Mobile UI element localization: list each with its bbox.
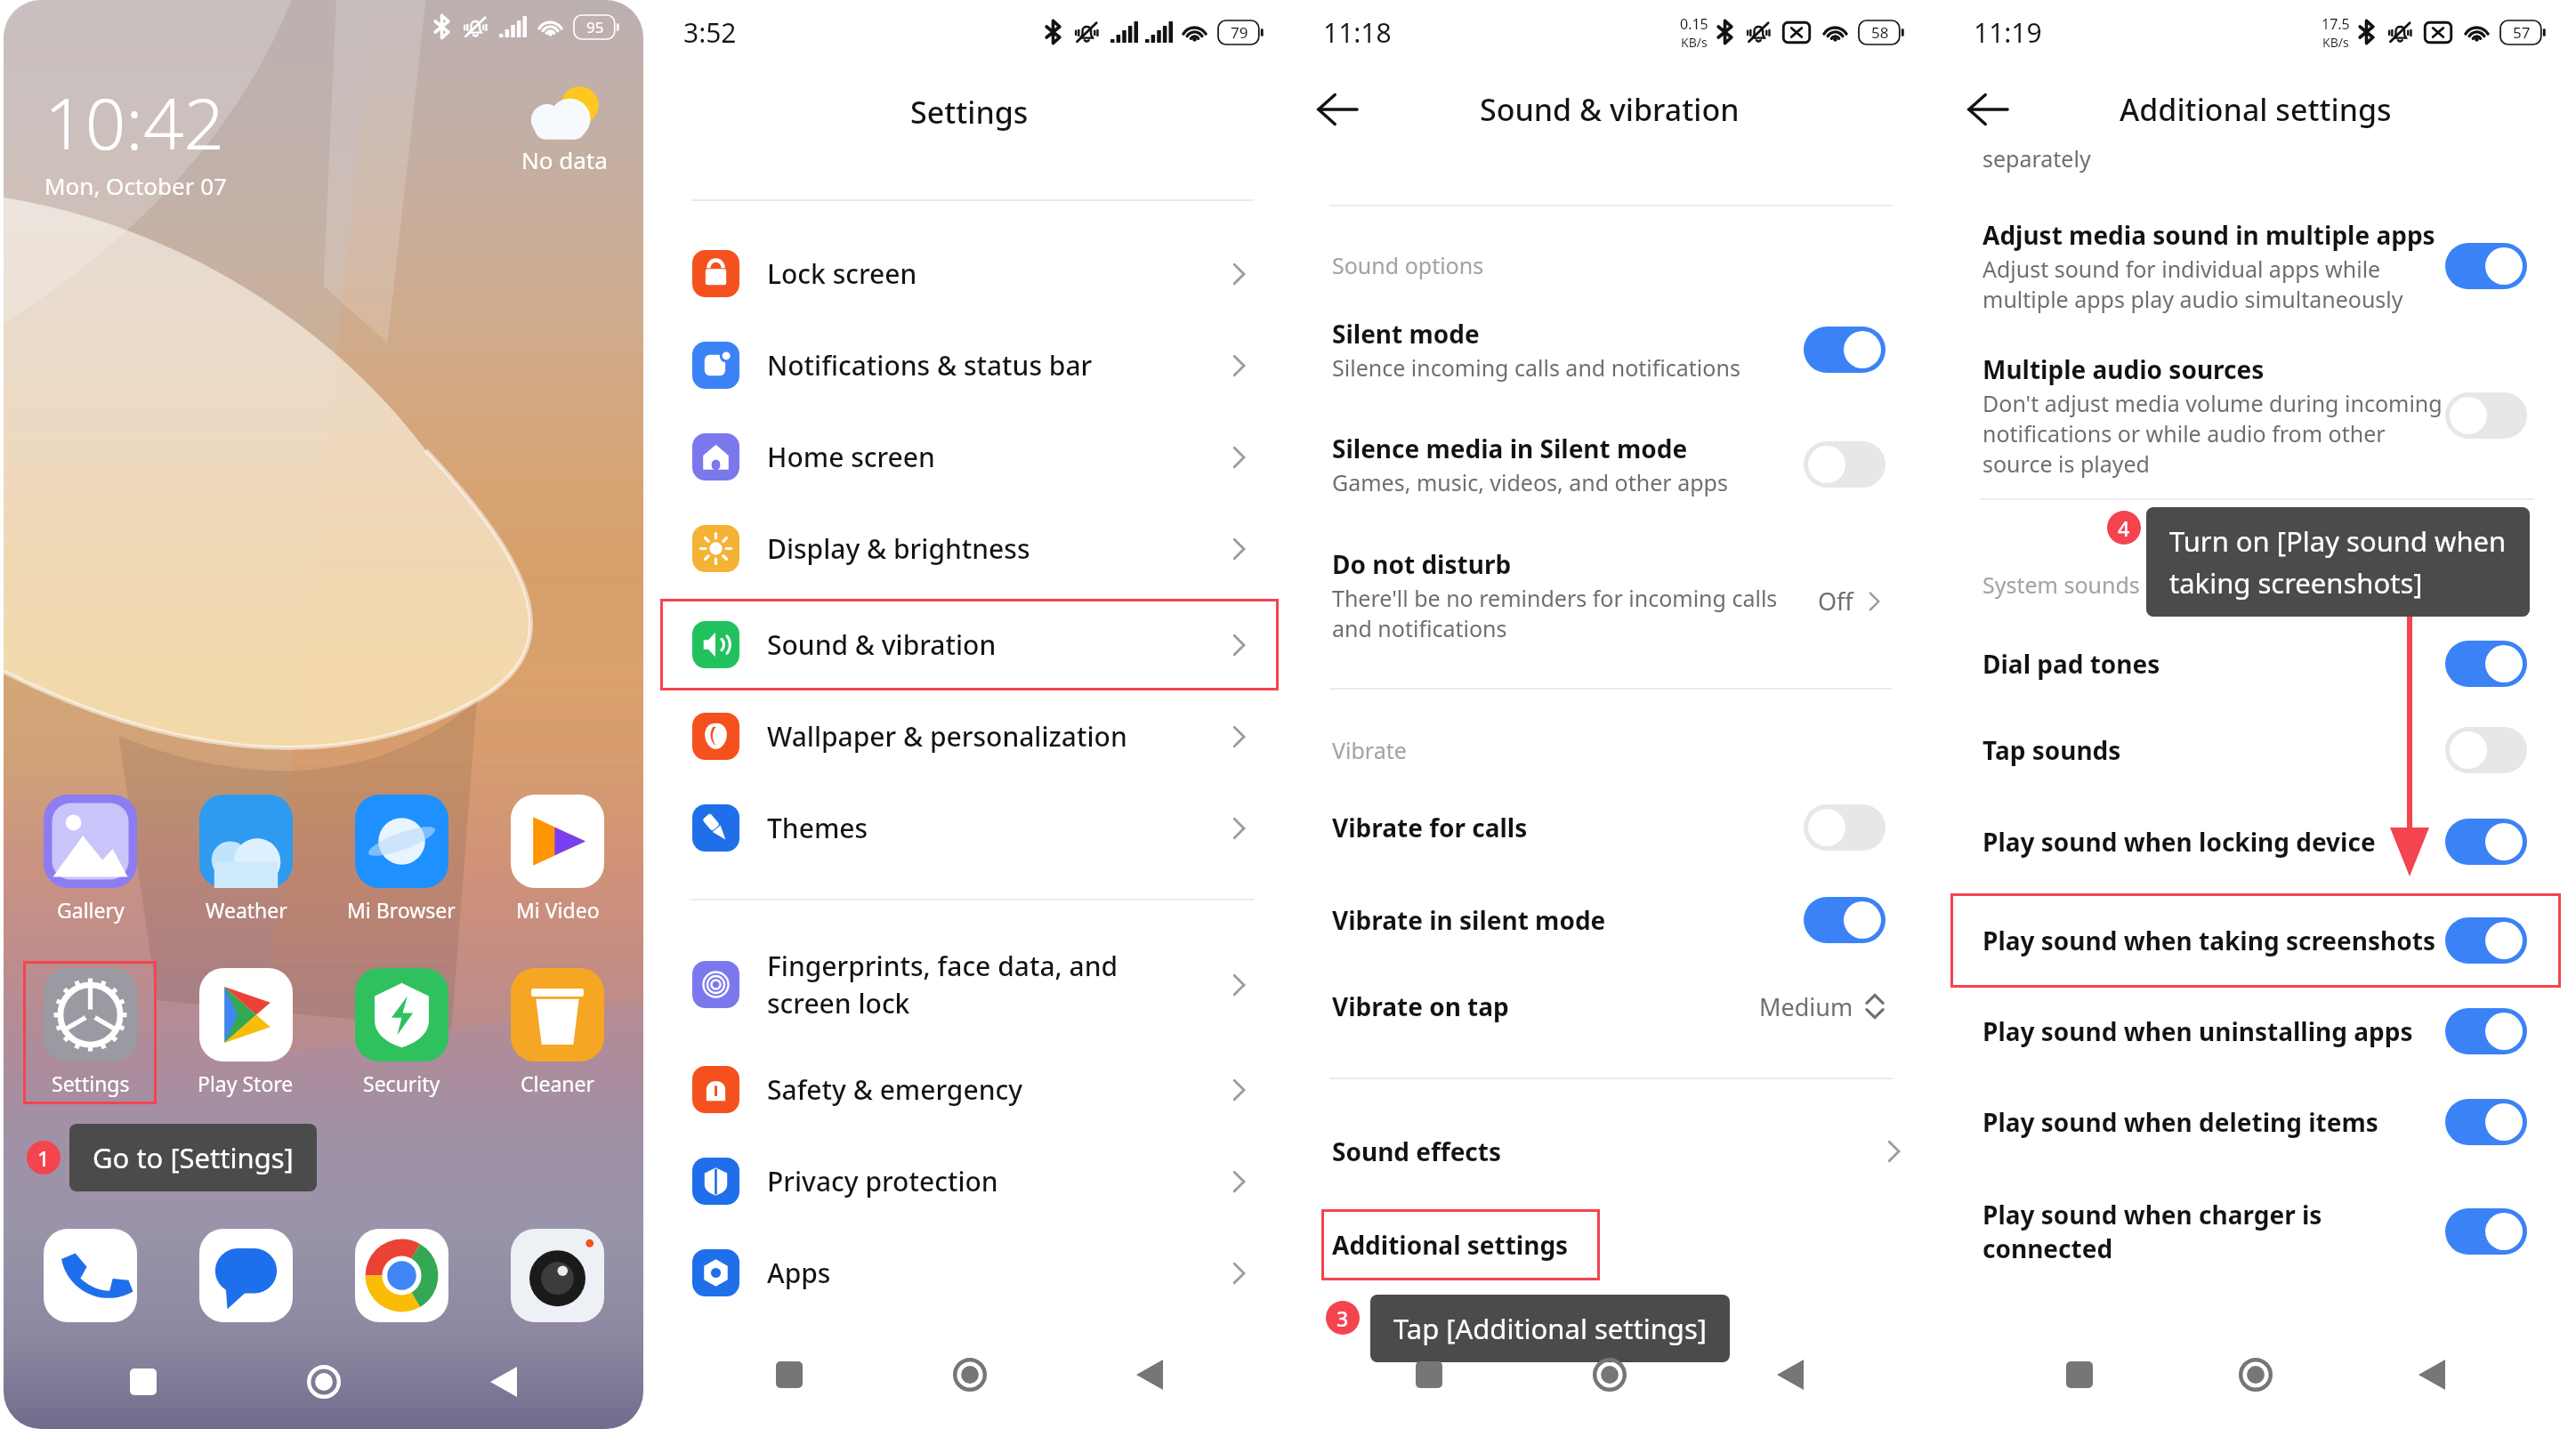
button[interactable]: Apps	[660, 1227, 1279, 1319]
button[interactable]: Vibrate on tap	[1289, 989, 1930, 1023]
button[interactable]: Sound effects	[1321, 1116, 1930, 1187]
button[interactable]: On	[2445, 1099, 2527, 1145]
staticText: 79	[1231, 22, 1248, 43]
button[interactable]: Sound & vibration	[660, 599, 1279, 690]
staticText: Themes	[767, 810, 1225, 846]
button[interactable]: Silence media in Silent mode	[1300, 408, 1919, 521]
button[interactable]: Silent mode	[1300, 293, 1919, 407]
staticText: Security	[363, 1070, 440, 1097]
button[interactable]: Safety & emergency	[660, 1044, 1279, 1135]
button[interactable]: Play Store	[179, 961, 312, 1104]
button[interactable]: Multiple audio sources	[1950, 328, 2561, 503]
staticText: Vibrate for calls	[1332, 811, 1528, 844]
button[interactable]: Vibrate in silent mode	[1300, 873, 1919, 967]
button[interactable]: On	[2445, 1208, 2527, 1255]
button[interactable]: Home screen	[660, 411, 1279, 503]
staticText: Multiple audio sources	[1982, 352, 2265, 386]
button[interactable]: On	[2445, 1008, 2527, 1054]
button[interactable]: Themes	[660, 782, 1279, 874]
button[interactable]: Recents	[114, 1352, 173, 1411]
button[interactable]: Adjust media sound in multiple apps	[1950, 194, 2561, 338]
button[interactable]: Additional settings	[1321, 1209, 1600, 1280]
button[interactable]: Home	[295, 1352, 353, 1411]
staticText: Silent mode	[1332, 317, 1480, 351]
staticText: Vibrate on tap	[1332, 989, 1759, 1023]
staticText: Lock screen	[767, 255, 1225, 292]
staticText: Sound options	[1332, 250, 1484, 280]
button[interactable]: Back	[1761, 1345, 1820, 1404]
button[interactable]: Off	[2445, 727, 2527, 773]
button[interactable]: Home	[1580, 1345, 1639, 1404]
button[interactable]: Play sound when locking device	[1950, 795, 2561, 889]
button[interactable]: On	[2445, 243, 2527, 289]
staticText: 95	[586, 17, 604, 37]
staticText: Off	[1818, 585, 1853, 618]
button[interactable]: Settings	[23, 961, 157, 1104]
button[interactable]: Back	[1304, 76, 1371, 143]
staticText: Gallery	[57, 896, 125, 924]
button[interactable]: Chrome	[335, 1222, 468, 1329]
button[interactable]: Back	[1120, 1345, 1179, 1404]
button[interactable]: Phone	[23, 1222, 157, 1329]
button[interactable]: On	[2445, 917, 2527, 964]
staticText: Do not disturb	[1332, 547, 1512, 581]
button[interactable]: On	[2445, 641, 2527, 687]
button[interactable]: Play sound when uninstalling apps	[1950, 984, 2561, 1078]
staticText: Play Store	[198, 1070, 294, 1097]
staticText: KB/s	[1681, 34, 1708, 51]
button[interactable]: Back	[2402, 1345, 2461, 1404]
button[interactable]: Dial pad tones	[1950, 617, 2561, 711]
staticText: Mi Browser	[347, 896, 456, 924]
button[interactable]: Home	[2226, 1345, 2285, 1404]
staticText: Vibrate in silent mode	[1332, 903, 1606, 937]
button[interactable]: Off	[1804, 441, 1886, 488]
button[interactable]: Play sound when deleting items	[1950, 1075, 2561, 1169]
staticText: 11:18	[1323, 14, 1392, 51]
button[interactable]: Back	[1954, 76, 2022, 143]
staticText: No data	[521, 144, 608, 175]
button[interactable]: Back	[474, 1352, 533, 1411]
staticText: Play sound when taking screenshots	[1982, 924, 2435, 957]
button[interactable]: Do not disturb	[1289, 547, 1930, 643]
button[interactable]: Off	[2445, 392, 2527, 439]
button[interactable]: On	[1804, 327, 1886, 373]
button[interactable]: Camera	[490, 1222, 624, 1329]
button[interactable]: Mi Browser	[335, 787, 468, 931]
staticText: Play sound when charger is connected	[1982, 1198, 2322, 1265]
staticText: Fingerprints, face data, and screen lock	[767, 948, 1225, 1021]
staticText: Turn on [Play sound when taking screensh…	[2169, 522, 2507, 601]
button[interactable]: Recents	[2050, 1345, 2109, 1404]
staticText: Mi Video	[516, 896, 600, 924]
button[interactable]: On	[1804, 897, 1886, 943]
button[interactable]: Gallery	[23, 787, 157, 931]
button[interactable]: Off	[1804, 804, 1886, 851]
button[interactable]: Wallpaper & personalization	[660, 690, 1279, 782]
staticText: Display & brightness	[767, 530, 1225, 567]
staticText: 57	[2513, 22, 2531, 43]
staticText: System sounds	[1982, 569, 2140, 600]
button[interactable]: Notifications & status bar	[660, 319, 1279, 411]
button[interactable]: Messages	[179, 1222, 312, 1329]
button[interactable]: Recents	[1400, 1345, 1458, 1404]
staticText: Sound & vibration	[767, 626, 1225, 663]
staticText: Medium	[1759, 990, 1853, 1023]
button[interactable]: Mi Video	[490, 787, 624, 931]
button[interactable]: Vibrate for calls	[1300, 780, 1919, 875]
staticText: Safety & emergency	[767, 1071, 1225, 1108]
staticText: Privacy protection	[767, 1163, 1225, 1199]
staticText: Tap sounds	[1982, 733, 2121, 767]
button[interactable]: Tap sounds	[1950, 703, 2561, 797]
button[interactable]: Lock screen	[660, 228, 1279, 319]
button[interactable]: Fingerprints, face data, and screen lock	[660, 925, 1279, 1044]
button[interactable]: On	[2445, 819, 2527, 865]
button[interactable]: Home	[941, 1345, 999, 1404]
button[interactable]: Weather	[179, 787, 312, 931]
staticText: 58	[1871, 22, 1889, 43]
button[interactable]: Play sound when taking screenshots	[1950, 893, 2561, 988]
button[interactable]: Security	[335, 961, 468, 1104]
button[interactable]: Display & brightness	[660, 503, 1279, 594]
button[interactable]: Privacy protection	[660, 1135, 1279, 1227]
button[interactable]: Recents	[760, 1345, 819, 1404]
button[interactable]: Play sound when charger is connected	[1950, 1174, 2561, 1289]
button[interactable]: Cleaner	[490, 961, 624, 1104]
